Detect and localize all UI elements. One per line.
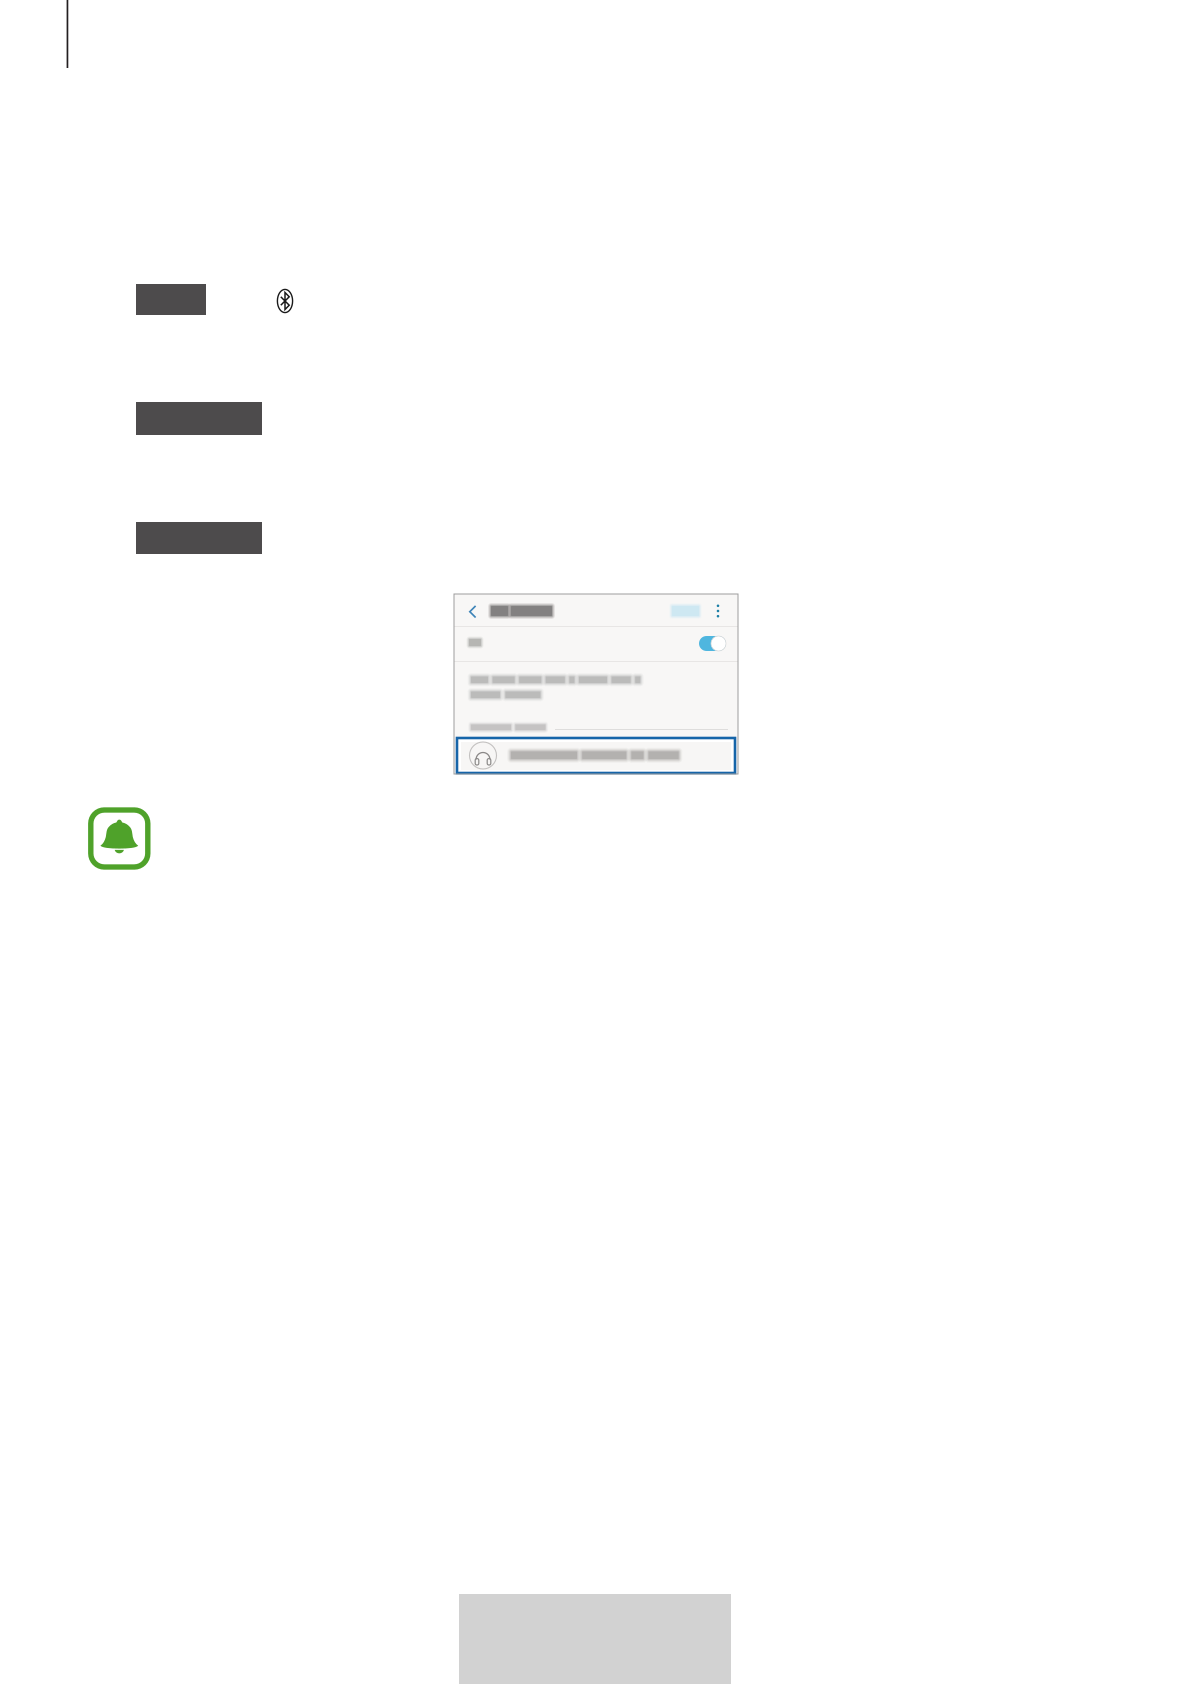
button[interactable]: Back bbox=[454, 594, 738, 774]
button[interactable]: Headphone device bbox=[454, 594, 738, 774]
button[interactable]: Bluetooth on bbox=[454, 594, 738, 774]
button[interactable]: Scan bbox=[454, 594, 738, 774]
button[interactable]: More options bbox=[454, 594, 738, 774]
